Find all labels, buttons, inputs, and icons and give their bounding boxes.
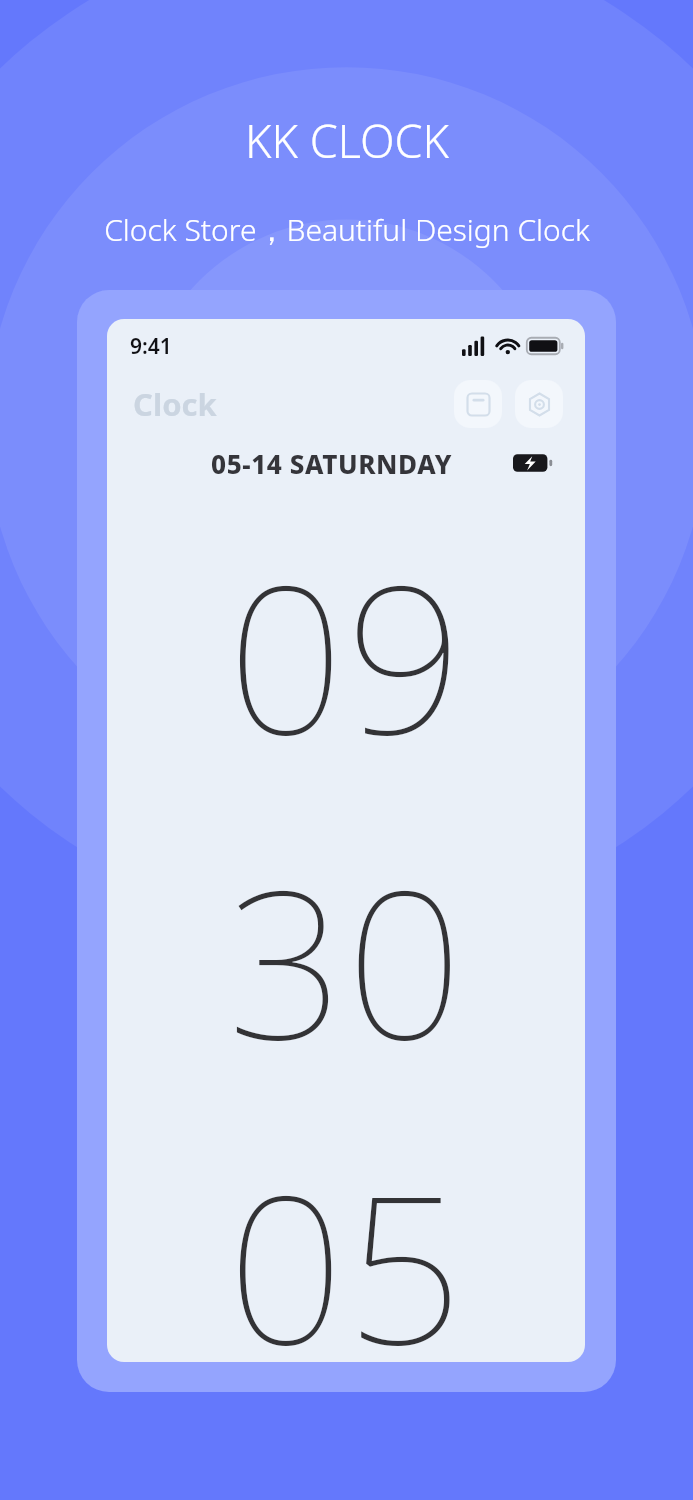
staticText: 30 [227,820,465,1099]
staticText: Clock [133,383,217,425]
staticText: Clock Store，Beautiful Design Clock [104,209,590,250]
button[interactable]: Settings [515,380,563,428]
staticText: 05-14 SATURNDAY [211,446,453,481]
button[interactable]: Cards [454,380,502,428]
staticText: 05 [227,1125,465,1362]
staticText: 9:41 [130,332,172,361]
staticText: KK CLOCK [245,110,449,171]
staticText: 09 [227,515,465,794]
